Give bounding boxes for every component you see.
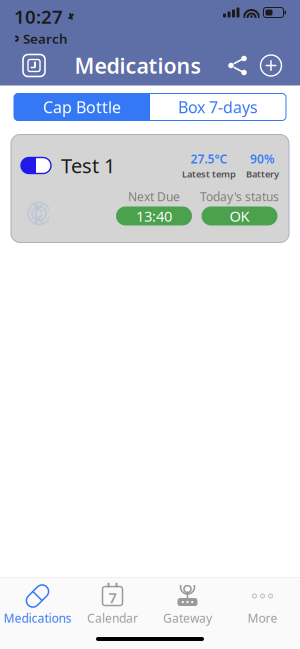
button[interactable]: App [12,48,56,82]
staticText: More [247,610,277,626]
button[interactable]: Test 1 [11,134,289,242]
staticText: Medications [74,51,201,80]
staticText: Today's status [200,188,279,204]
staticText: Next Due [128,188,180,204]
staticText: 7 [108,588,116,607]
button[interactable]: Add [254,48,288,82]
staticText: Gateway [163,610,212,626]
staticText: 13:40 [136,206,172,226]
staticText: OK [229,206,249,226]
staticText: Cap Bottle [43,96,121,118]
button[interactable]: Gateway [150,579,225,626]
staticText: Latest temp [182,168,236,180]
staticText: 90% [250,151,275,167]
staticText: 27.5°C [190,151,227,167]
button[interactable]: Cap Bottle [14,93,150,120]
button[interactable]: Medications [0,579,75,626]
staticText: Search [23,30,68,47]
button[interactable]: Share [220,48,254,82]
staticText: Box 7-days [178,96,258,118]
staticText: Calendar [87,610,138,626]
staticText: Medications [3,610,71,626]
button[interactable]: More [225,579,300,626]
button[interactable]: 7 [75,579,150,626]
staticText: Battery [246,168,279,180]
staticText: Test 1 [61,152,115,179]
button[interactable]: Box 7-days [150,93,286,120]
staticText: 10:27 [14,4,63,29]
